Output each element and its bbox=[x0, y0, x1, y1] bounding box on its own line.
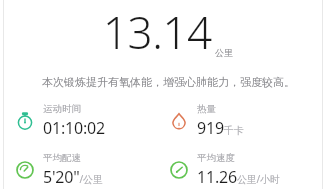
staticText: 13.14 bbox=[103, 2, 212, 62]
staticText: 平均速度 bbox=[197, 152, 235, 164]
staticText: 运动时间 bbox=[43, 103, 81, 115]
staticText: 11.26公里/小时 bbox=[197, 166, 280, 188]
button[interactable]: Calories bbox=[168, 103, 322, 139]
staticText: 公里 bbox=[215, 47, 233, 58]
staticText: 5'20"/公里 bbox=[43, 166, 103, 188]
staticText: 平均配速 bbox=[43, 152, 81, 164]
button[interactable]: Average speed bbox=[168, 152, 322, 188]
button[interactable]: Duration bbox=[14, 103, 168, 139]
button[interactable]: Average pace bbox=[14, 152, 168, 188]
staticText: 本次锻炼提升有氧体能，增强心肺能力，强度较高。 bbox=[42, 75, 295, 89]
staticText: 01:10:02 bbox=[43, 117, 105, 139]
staticText: 热量 bbox=[197, 103, 216, 115]
staticText: 919千卡 bbox=[197, 117, 244, 139]
